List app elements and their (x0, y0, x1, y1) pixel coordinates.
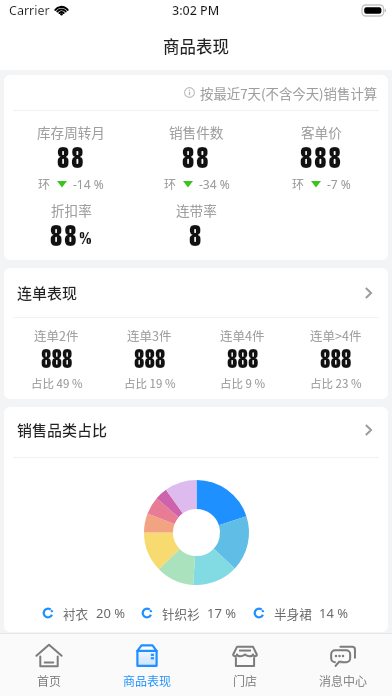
staticText: 17 % (207, 604, 237, 622)
staticText: 消息中心 (319, 672, 368, 689)
staticText: 连带率 (176, 200, 217, 220)
staticText: 占比 19 % (124, 375, 176, 392)
staticText: 销售品类占比 (17, 419, 108, 441)
button[interactable]: 首页 (0, 634, 98, 696)
staticText: 占比 9 % (220, 375, 266, 392)
staticText: 14 % (319, 604, 349, 622)
staticText: Carrier (9, 2, 50, 19)
staticText: 88 (57, 133, 86, 181)
staticText: 商品表现 (163, 34, 229, 58)
staticText: 半身裙 (274, 604, 312, 622)
button[interactable]: 销售品类占比 (4, 407, 388, 453)
staticText: 888 (320, 338, 352, 379)
staticText: 按最近7天(不含今天)销售计算 (200, 83, 378, 102)
staticText: % (79, 224, 92, 252)
staticText: 连单2件 (34, 326, 79, 344)
staticText: -14 % (73, 176, 104, 192)
staticText: 占比 23 % (310, 375, 362, 392)
staticText: -7 % (327, 176, 351, 192)
staticText: 888 (300, 133, 343, 181)
button[interactable]: 门店 (196, 634, 294, 696)
staticText: 8 (189, 211, 204, 259)
button[interactable]: 半身裙 (253, 607, 349, 619)
staticText: 888 (227, 338, 259, 379)
staticText: 888 (134, 338, 166, 379)
staticText: 占比 49 % (31, 375, 83, 392)
staticText: 首页 (37, 672, 62, 689)
staticText: 环 (292, 175, 305, 192)
staticText: 环 (38, 175, 51, 192)
button[interactable]: 商品表现 (98, 634, 196, 696)
staticText: 环 (164, 175, 177, 192)
staticText: 折扣率 (51, 200, 92, 220)
staticText: 连单>4件 (310, 326, 362, 344)
button[interactable]: 针织衫 (141, 607, 237, 619)
staticText: 客单价 (301, 122, 342, 142)
staticText: 20 % (96, 604, 126, 622)
staticText: 针织衫 (162, 604, 200, 622)
button[interactable]: 消息中心 (294, 634, 392, 696)
staticText: 门店 (233, 672, 258, 689)
button[interactable]: 连单表现 (4, 268, 388, 317)
staticText: 88 (50, 211, 79, 259)
staticText: 库存周转月 (37, 122, 105, 142)
staticText: 3:02 PM (172, 2, 220, 19)
staticText: 连单3件 (127, 326, 172, 344)
button[interactable]: 衬衣 (42, 607, 126, 619)
staticText: 商品表现 (123, 672, 172, 689)
staticText: 连单4件 (220, 326, 265, 344)
staticText: 销售件数 (169, 122, 224, 142)
staticText: 连单表现 (17, 282, 78, 304)
staticText: 衬衣 (63, 604, 89, 622)
staticText: 88 (182, 133, 211, 181)
staticText: 888 (41, 338, 73, 379)
staticText: -34 % (199, 176, 230, 192)
